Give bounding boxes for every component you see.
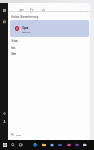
staticText: Videos	[11, 52, 16, 56]
button[interactable]: Menu	[0, 6, 8, 14]
staticText: Opera	[22, 26, 28, 30]
button[interactable]: Fotos	[8, 45, 90, 51]
button[interactable]: Opera	[10, 20, 89, 37]
button[interactable]: Umbrar	[8, 38, 90, 44]
staticText: Umbrar	[11, 39, 18, 43]
button[interactable]: Camera	[81, 140, 89, 150]
button[interactable]: Documents	[28, 7, 35, 14]
button[interactable]: Photos	[65, 140, 73, 150]
button[interactable]: Start	[1, 140, 9, 150]
staticText: Filter	[78, 10, 84, 13]
button[interactable]: Search	[9, 140, 17, 150]
button[interactable]: Home	[0, 17, 8, 25]
button[interactable]: Store	[48, 140, 56, 150]
staticText: Desktop-App	[22, 31, 31, 33]
staticText: Fotos	[11, 46, 15, 50]
button[interactable]: Videos	[8, 51, 90, 57]
button[interactable]: Teams	[56, 140, 64, 150]
staticText: Höchste Übereinstimmung	[11, 15, 39, 19]
button[interactable]: Settings	[40, 7, 47, 14]
button[interactable]: Apps	[18, 7, 25, 14]
button[interactable]: Account	[0, 117, 8, 125]
button[interactable]: oper	[8, 129, 89, 140]
staticText: oper	[16, 133, 22, 136]
button[interactable]: Settings	[0, 109, 8, 117]
button[interactable]: Filter	[78, 8, 88, 14]
button[interactable]: File Explorer	[40, 140, 48, 150]
button[interactable]: Edge	[31, 140, 39, 150]
button[interactable]: Task view	[17, 140, 25, 150]
button[interactable]: Settings app	[73, 140, 81, 150]
